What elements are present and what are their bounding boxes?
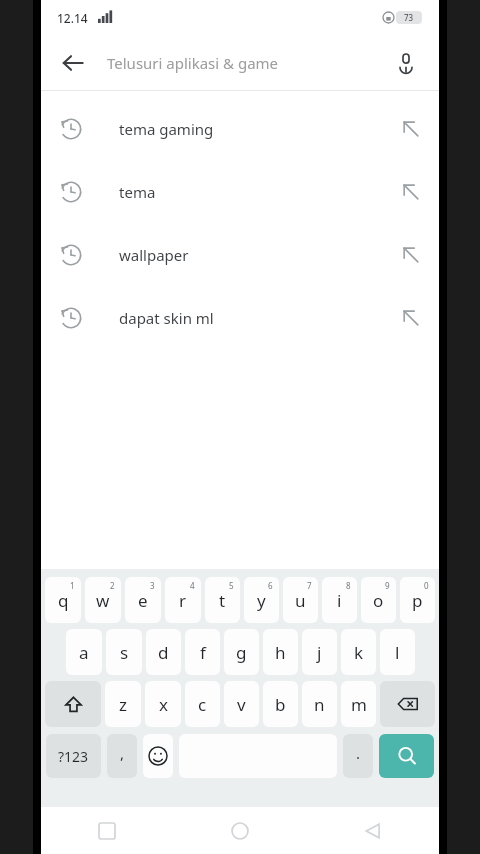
staticText: . <box>356 743 361 763</box>
button[interactable]: i <box>322 577 357 623</box>
staticText: s <box>120 641 129 664</box>
staticText: 9 <box>385 580 390 591</box>
staticText: 0 <box>424 580 429 591</box>
button[interactable]: l <box>380 629 415 675</box>
button[interactable]: , <box>107 734 137 778</box>
staticText: e <box>138 589 148 612</box>
staticText: c <box>198 693 207 716</box>
button[interactable]: j <box>302 629 337 675</box>
button[interactable]: q <box>45 577 81 623</box>
button[interactable]: d <box>146 629 181 675</box>
staticText: u <box>295 589 306 612</box>
staticText: 2 <box>110 580 115 591</box>
button[interactable]: u <box>283 577 318 623</box>
staticText: k <box>354 641 364 664</box>
button[interactable]: s <box>106 629 142 675</box>
staticText: q <box>58 589 69 612</box>
staticText: r <box>179 589 187 612</box>
staticText: v <box>237 693 246 716</box>
staticText: 12.14 <box>57 10 88 26</box>
button[interactable]: Insert tema <box>383 160 439 223</box>
staticText: y <box>257 589 266 612</box>
button[interactable]: p <box>400 577 435 623</box>
staticText: , <box>120 743 125 763</box>
staticText: a <box>79 641 89 664</box>
staticText: 73 <box>404 12 414 23</box>
staticText: x <box>159 693 168 716</box>
staticText: j <box>317 641 322 664</box>
staticText: p <box>412 589 423 612</box>
button[interactable]: n <box>302 681 337 727</box>
button[interactable]: Shift <box>45 681 101 727</box>
staticText: i <box>337 589 342 612</box>
button[interactable]: . <box>343 734 373 778</box>
button[interactable]: Search <box>379 734 434 778</box>
button[interactable]: Back <box>49 39 97 87</box>
button[interactable]: t <box>205 577 240 623</box>
button[interactable]: w <box>85 577 121 623</box>
button[interactable]: dapat skin ml <box>41 286 439 349</box>
staticText: tema <box>119 182 383 202</box>
staticText: Telusuri aplikasi & game <box>107 53 279 73</box>
button[interactable]: Home <box>173 807 306 854</box>
button[interactable]: g <box>224 629 259 675</box>
button[interactable]: v <box>224 681 259 727</box>
button[interactable]: c <box>185 681 220 727</box>
staticText: 4 <box>190 580 195 591</box>
staticText: h <box>275 641 286 664</box>
staticText: z <box>119 693 127 716</box>
staticText: n <box>314 693 325 716</box>
button[interactable]: ?123 <box>46 734 101 778</box>
button[interactable]: k <box>341 629 376 675</box>
button[interactable]: x <box>145 681 181 727</box>
button[interactable]: Voice search <box>383 40 429 86</box>
button[interactable]: Insert dapat skin ml <box>383 286 439 349</box>
button[interactable]: Recents <box>41 807 173 854</box>
staticText: 8 <box>346 580 351 591</box>
staticText: l <box>395 641 400 664</box>
button[interactable]: tema gaming <box>41 97 439 160</box>
button[interactable]: o <box>361 577 396 623</box>
button[interactable]: r <box>165 577 201 623</box>
staticText: m <box>351 693 367 716</box>
staticText: 3 <box>150 580 155 591</box>
button[interactable]: Back <box>306 807 439 854</box>
button[interactable]: wallpaper <box>41 223 439 286</box>
button[interactable]: f <box>185 629 220 675</box>
button[interactable]: e <box>125 577 161 623</box>
staticText: 6 <box>268 580 273 591</box>
button[interactable]: h <box>263 629 298 675</box>
button[interactable]: Backspace <box>380 681 435 727</box>
button[interactable]: z <box>105 681 141 727</box>
staticText: d <box>158 641 169 664</box>
button[interactable]: Emoji <box>143 734 173 778</box>
button[interactable]: a <box>66 629 102 675</box>
button[interactable]: m <box>341 681 376 727</box>
button[interactable]: Telusuri aplikasi & game <box>97 35 383 90</box>
staticText: o <box>373 589 384 612</box>
staticText: wallpaper <box>119 245 383 265</box>
staticText: 1 <box>70 580 75 591</box>
staticText: dapat skin ml <box>119 308 383 328</box>
staticText: tema gaming <box>119 119 383 139</box>
staticText: 5 <box>229 580 234 591</box>
staticText: w <box>96 589 110 612</box>
button[interactable]: Insert wallpaper <box>383 223 439 286</box>
staticText: f <box>200 641 206 664</box>
button[interactable]: tema <box>41 160 439 223</box>
button[interactable]: Insert tema gaming <box>383 97 439 160</box>
staticText: 7 <box>307 580 312 591</box>
staticText: ?123 <box>58 747 89 766</box>
staticText: g <box>236 641 247 664</box>
button[interactable]: y <box>244 577 279 623</box>
staticText: t <box>219 589 226 612</box>
staticText: b <box>275 693 286 716</box>
button[interactable]: b <box>263 681 298 727</box>
